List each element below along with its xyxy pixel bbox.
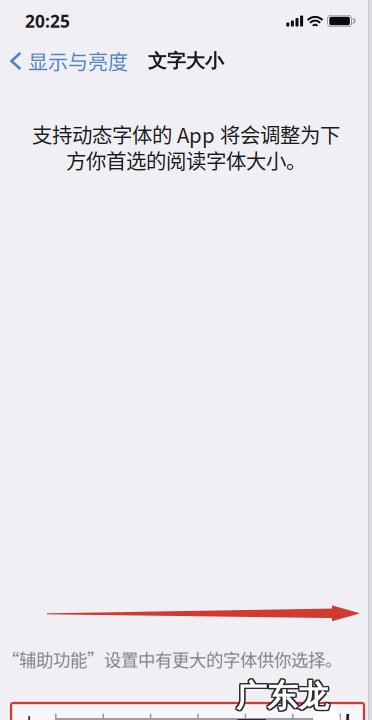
staticText: 广东龙网 [237, 677, 330, 720]
staticText: 显示与亮度 [28, 46, 128, 75]
staticText: 小 [19, 710, 39, 720]
staticText: 广东龙网 [236, 676, 329, 720]
staticText: 广东龙网 [237, 676, 330, 720]
button[interactable]: 文字大小 [128, 44, 224, 78]
staticText: 方你首选的阅读字体大小。 [66, 145, 306, 175]
staticText: 大 [331, 703, 364, 720]
staticText: 广东龙网 [236, 677, 329, 720]
staticText: “辅助功能”设置中有更大的字体供你选择。 [2, 646, 342, 672]
staticText: 文字大小 [148, 49, 224, 73]
staticText: 支持动态字体的 App 将会调整为下 [32, 119, 340, 149]
staticText: 广东龙网 [237, 678, 330, 720]
button[interactable]: 显示与亮度 [0, 41, 128, 80]
staticText: 广东龙网 [235, 678, 328, 720]
button[interactable]: 文字大小滑块 [11, 703, 364, 720]
staticText: 20:25 [25, 9, 70, 33]
staticText: 广东龙网 [236, 678, 329, 720]
staticText: 广东龙网 [235, 677, 328, 720]
staticText: 广东龙网 [235, 676, 328, 720]
